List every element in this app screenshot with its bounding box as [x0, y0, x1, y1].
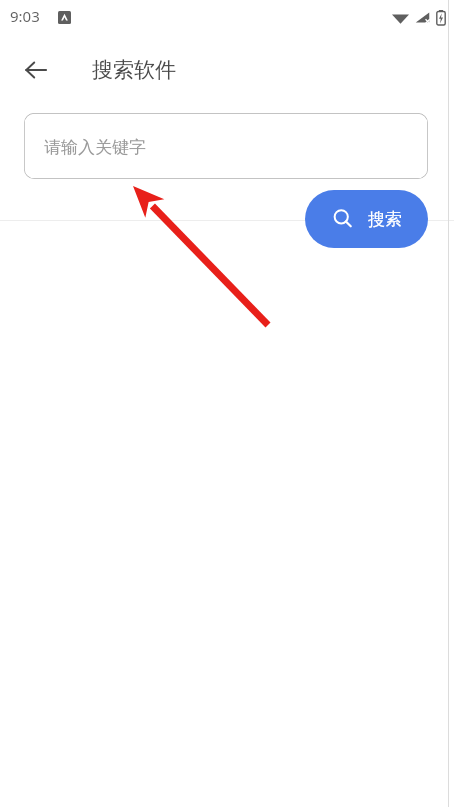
staticText: 请输入关键字 [44, 137, 146, 158]
staticText: 搜索软件 [92, 57, 176, 83]
button[interactable]: 请输入关键字 [24, 113, 428, 179]
button[interactable]: 搜索 [305, 190, 428, 248]
staticText: 9:03 [10, 6, 40, 26]
button[interactable]: Back [14, 48, 58, 92]
staticText: 搜索 [368, 209, 402, 230]
